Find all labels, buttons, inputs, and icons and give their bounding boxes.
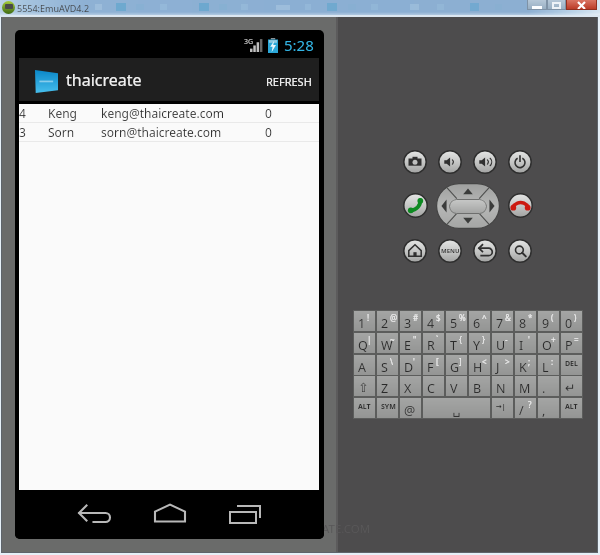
button[interactable]: . [538,376,559,396]
button[interactable]: Power [508,150,532,174]
button[interactable]: M [515,376,536,396]
button[interactable]: S [377,355,398,375]
staticText: 3 [404,315,412,332]
button[interactable]: H [469,355,490,375]
button[interactable]: 0 [561,311,582,331]
button[interactable]: Home [152,496,188,532]
staticText: M [519,380,531,397]
staticText: sorn@thaicreate.com [101,124,222,140]
staticText: A [358,359,366,376]
button[interactable]: D-pad [436,183,500,229]
staticText: Z [381,380,389,397]
button[interactable]: 6 [469,311,490,331]
button[interactable]: 4 [19,104,319,122]
button[interactable]: 4 [423,311,444,331]
button[interactable]: Menu [438,239,462,263]
button[interactable]: Call [403,193,428,218]
button[interactable]: D [400,355,421,375]
button[interactable]: / [515,398,536,418]
staticText: Y [473,337,481,354]
staticText: ] [459,356,462,367]
staticText: $ [436,312,441,323]
staticText: L [542,359,549,376]
button[interactable]: Q [354,333,375,353]
button[interactable] [19,58,319,101]
button[interactable]: Search [508,239,532,263]
button[interactable]: T [446,333,467,353]
staticText: % [459,312,466,323]
staticText: . [542,380,546,397]
staticText: J [496,359,500,376]
button[interactable]: REFRESH [259,60,319,103]
button[interactable]: 3 [19,123,319,141]
button[interactable]: I [515,333,536,353]
button[interactable]: @ [400,398,421,418]
staticText: + [551,334,556,345]
button[interactable]: C [423,376,444,396]
staticText: > [505,356,510,367]
staticText: ~ [390,334,395,345]
button[interactable]: J [492,355,513,375]
staticText: Q [358,337,368,354]
button[interactable]: F [423,355,444,375]
button[interactable]: Camera [403,150,427,174]
button[interactable]: ␣ [423,398,490,418]
staticText: W [381,337,393,354]
button[interactable]: Minimize [527,0,547,10]
button[interactable]: R [423,333,444,353]
staticText: P [565,337,573,354]
button[interactable]: X [400,376,421,396]
button[interactable]: E [400,333,421,353]
button[interactable]: O [538,333,559,353]
staticText: < [482,356,487,367]
button[interactable]: Close [566,0,597,10]
button[interactable]: G [446,355,467,375]
staticText: ^ [482,312,487,323]
button[interactable]: U [492,333,513,353]
button[interactable]: A [354,355,375,375]
staticText: 5:28 [284,35,314,55]
button[interactable]: V [446,376,467,396]
button[interactable]: DEL [561,355,582,375]
button[interactable]: P [561,333,582,353]
button[interactable]: B [469,376,490,396]
button[interactable]: 2 [377,311,398,331]
staticText: | [367,334,372,345]
button[interactable]: Recent apps [227,496,263,532]
button[interactable]: 9 [538,311,559,331]
button[interactable]: ALT [561,398,582,418]
button[interactable]: 7 [492,311,513,331]
staticText: thaicreate [66,69,142,91]
button[interactable]: Volume up [473,150,497,174]
button[interactable]: Home [403,239,427,263]
button[interactable]: 8 [515,311,536,331]
staticText: ALT [358,402,371,412]
button[interactable]: Y [469,333,490,353]
button[interactable]: ↵ [561,376,582,396]
button[interactable]: 3 [400,311,421,331]
button[interactable]: SYM [377,398,398,418]
button[interactable]: Maximize [547,0,566,10]
staticText: N [496,380,506,397]
staticText: # [413,312,419,323]
staticText: keng@thaicreate.com [101,105,224,121]
button[interactable]: End call [508,193,533,218]
button[interactable]: K [515,355,536,375]
button[interactable]: L [538,355,559,375]
staticText: ' [528,334,530,345]
staticText: DEL [565,359,578,369]
button[interactable]: , [538,398,559,418]
button[interactable]: 5 [446,311,467,331]
button[interactable]: 1 [354,311,375,331]
button[interactable]: ALT [354,398,375,418]
button[interactable]: N [492,376,513,396]
button[interactable]: Z [377,376,398,396]
staticText: ␣ [423,402,490,417]
button[interactable]: Back [77,496,113,532]
button[interactable]: Volume down [438,150,462,174]
button[interactable]: W [377,333,398,353]
staticText: 6 [473,315,481,332]
button[interactable]: ⇧ [354,376,375,396]
button[interactable]: →| [492,398,513,418]
button[interactable]: Back [473,239,497,263]
